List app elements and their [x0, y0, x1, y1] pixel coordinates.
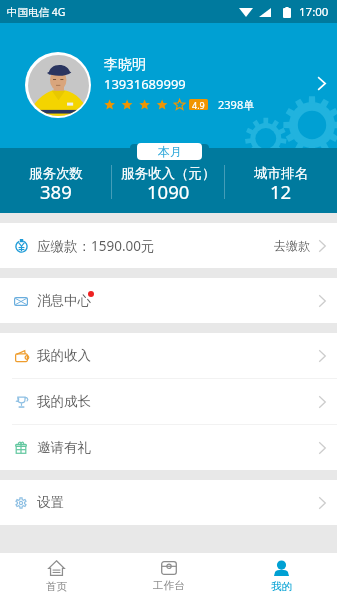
button[interactable]: 我的成长: [0, 379, 337, 424]
staticText: 邀请有礼: [37, 439, 91, 456]
staticText: 李晓明: [104, 56, 146, 74]
staticText: 389: [40, 179, 72, 204]
button[interactable]: 我的: [225, 553, 337, 600]
staticText: 17:00: [299, 4, 329, 20]
staticText: 首页: [46, 580, 67, 593]
button[interactable]: 首页: [0, 553, 113, 600]
button[interactable]: 我的收入: [0, 333, 337, 378]
staticText: 中国电信 4G: [7, 5, 66, 19]
button[interactable]: 本月: [137, 143, 202, 160]
staticText: 我的成长: [37, 393, 91, 410]
staticText: 服务次数: [29, 165, 83, 182]
button[interactable]: 消息中心: [0, 278, 337, 323]
staticText: 13931689999: [104, 75, 186, 93]
staticText: 4.9: [192, 99, 205, 110]
staticText: 去缴款: [274, 238, 310, 253]
staticText: 工作台: [153, 579, 185, 592]
staticText: 本月: [158, 144, 182, 159]
staticText: 12: [270, 179, 292, 204]
button[interactable]: 设置: [0, 480, 337, 525]
other: 查看个人资料: [318, 77, 326, 90]
staticText: 2398单: [218, 97, 255, 112]
staticText: 服务收入（元）: [121, 165, 216, 182]
staticText: 我的收入: [37, 347, 91, 364]
button[interactable]: 工作台: [113, 553, 225, 600]
staticText: 1090: [147, 179, 190, 204]
staticText: 应缴款：1590.00元: [37, 237, 155, 255]
button[interactable]: 应缴款：1590.00元: [0, 223, 337, 268]
button[interactable]: 李晓明: [0, 23, 337, 148]
staticText: 设置: [37, 494, 64, 511]
button[interactable]: 邀请有礼: [0, 425, 337, 470]
staticText: 城市排名: [254, 165, 308, 182]
staticText: 我的: [271, 580, 292, 593]
staticText: 消息中心: [37, 292, 91, 309]
